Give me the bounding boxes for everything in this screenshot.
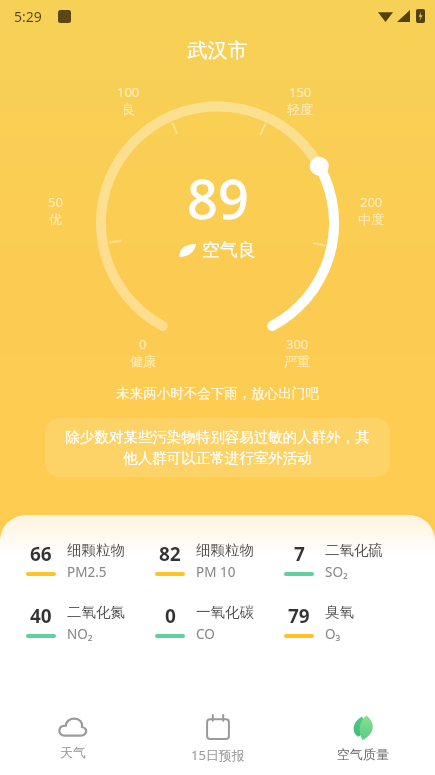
staticText: 细颗粒物 [67,541,125,559]
staticText: 100 [117,83,140,101]
staticText: SO₂ [325,563,348,581]
staticText: 除少数对某些污染物特别容易过敏的人群外，其他人群可以正常进行室外活动 [59,428,376,467]
staticText: 细颗粒物 [196,541,254,559]
staticText: PM 10 [196,563,236,581]
other: 15日预报 [205,715,231,741]
button[interactable]: 0 [153,603,282,643]
staticText: 50 [48,193,63,211]
staticText: 15日预报 [191,746,245,764]
staticText: CO [196,625,215,643]
staticText: 200 [360,193,383,211]
staticText: 150 [289,83,312,101]
staticText: 优 [49,211,62,227]
button[interactable]: 空气质量 [290,703,435,775]
staticText: 0 [165,603,176,629]
staticText: 5:29 [14,7,42,26]
staticText: 82 [159,541,181,567]
button[interactable]: 79 [282,603,411,643]
staticText: 未来两小时不会下雨，放心出门吧 [0,385,435,402]
button[interactable]: 82 [153,541,282,581]
staticText: 臭氧 [325,603,354,621]
staticText: 二氧化硫 [325,541,383,559]
staticText: 89 [187,161,249,235]
button[interactable]: 7 [282,541,411,581]
staticText: 健康 [130,353,156,369]
staticText: 79 [288,603,310,629]
button[interactable]: 天气 [0,703,145,775]
staticText: 轻度 [287,101,313,117]
button[interactable]: 除少数对某些污染物特别容易过敏的人群外，其他人群可以正常进行室外活动 [45,418,390,477]
staticText: NO₂ [67,625,93,643]
staticText: 0 [139,335,147,353]
staticText: 66 [30,541,52,567]
staticText: 40 [30,603,52,629]
staticText: 中度 [358,211,384,227]
staticText: 空气质量 [337,746,389,762]
staticText: 良 [122,101,135,117]
button[interactable]: 40 [24,603,153,643]
staticText: 二氧化氮 [67,603,125,621]
staticText: 7 [294,541,305,567]
other: 空气质量 [349,715,377,741]
button[interactable]: 66 [24,541,153,581]
staticText: 一氧化碳 [196,603,254,621]
staticText: O₃ [325,625,341,643]
staticText: PM2.5 [67,563,107,581]
other: 天气 [58,715,88,739]
staticText: 300 [286,335,309,353]
staticText: 严重 [284,353,310,369]
staticText: 武汉市 [0,38,435,63]
staticText: 空气良 [202,239,256,262]
staticText: 天气 [60,744,86,760]
button[interactable]: 15日预报 [145,703,290,775]
